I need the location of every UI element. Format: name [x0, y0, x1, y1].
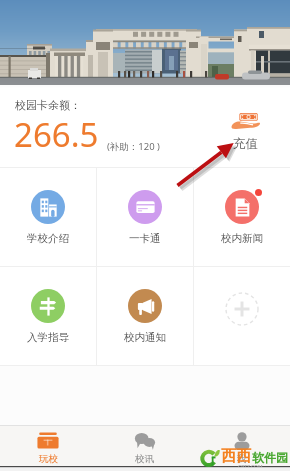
button[interactable]: 充值: [231, 111, 260, 152]
staticText: 校讯: [135, 453, 154, 465]
staticText: 校园卡余额：: [15, 98, 81, 112]
other: Add shortcut: [194, 267, 290, 365]
button[interactable]: 学校介绍: [0, 168, 96, 266]
staticText: CRTZ.COM: [238, 464, 263, 467]
button[interactable]: 校内通知: [97, 267, 193, 365]
staticText: 软件园: [252, 450, 288, 465]
staticText: 校内新闻: [221, 232, 263, 245]
staticText: 266.5: [14, 112, 99, 157]
staticText: 西西: [221, 447, 251, 466]
staticText: 校内通知: [124, 331, 166, 344]
staticText: (补助：120 ): [107, 140, 160, 153]
button[interactable]: 校内新闻: [194, 168, 290, 266]
button[interactable]: 校讯: [96, 426, 193, 467]
button[interactable]: 一卡通: [97, 168, 193, 266]
button[interactable]: 玩校: [0, 426, 96, 467]
staticText: 一卡通: [129, 232, 161, 245]
button[interactable]: Add shortcut: [194, 267, 290, 365]
button[interactable]: 我: [193, 426, 290, 467]
staticText: 入学指导: [27, 331, 69, 344]
staticText: 我: [237, 453, 247, 465]
staticText: 学校介绍: [27, 232, 69, 245]
staticText: 充值: [233, 136, 258, 152]
staticText: 玩校: [39, 453, 58, 465]
button[interactable]: 入学指导: [0, 267, 96, 365]
